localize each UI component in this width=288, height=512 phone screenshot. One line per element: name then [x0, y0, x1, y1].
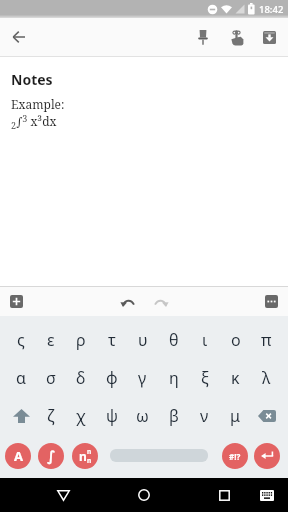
staticText: ζ — [47, 405, 55, 427]
button[interactable]: γ — [127, 358, 158, 398]
staticText: η — [169, 367, 179, 389]
button[interactable]: θ — [158, 321, 189, 358]
button[interactable] — [132, 483, 156, 507]
button[interactable]: ς — [6, 321, 36, 358]
button[interactable]: A — [5, 443, 31, 469]
staticText: δ — [76, 367, 86, 389]
staticText: κ — [231, 367, 240, 389]
staticText: n — [87, 447, 92, 456]
staticText: ξ — [201, 367, 209, 389]
button[interactable] — [151, 292, 171, 312]
button[interactable]: ι — [189, 321, 220, 358]
button[interactable] — [256, 484, 278, 506]
button[interactable]: χ — [66, 398, 96, 433]
button[interactable] — [193, 27, 213, 47]
staticText: n — [79, 448, 87, 464]
button[interactable] — [251, 398, 282, 433]
button[interactable] — [254, 443, 280, 469]
button[interactable]: τ — [96, 321, 127, 358]
staticText: 18:42 — [259, 3, 284, 16]
button[interactable] — [6, 398, 36, 433]
button[interactable] — [226, 27, 246, 47]
button[interactable] — [110, 449, 208, 462]
button[interactable]: δ — [66, 358, 96, 398]
staticText: τ — [108, 329, 116, 351]
staticText: θ — [169, 329, 179, 351]
button[interactable]: #!? — [222, 443, 248, 469]
staticText: φ — [106, 367, 118, 389]
staticText: χ — [76, 405, 86, 427]
button[interactable]: κ — [220, 358, 251, 398]
staticText: ψ — [106, 405, 118, 427]
staticText: Notes — [11, 70, 53, 89]
button[interactable]: υ — [127, 321, 158, 358]
button[interactable]: ξ — [189, 358, 220, 398]
button[interactable]: σ — [36, 358, 66, 398]
button[interactable]: ζ — [36, 398, 66, 433]
staticText: α — [16, 367, 26, 389]
button[interactable]: n — [72, 443, 98, 469]
staticText: σ — [46, 367, 56, 389]
button[interactable]: α — [6, 358, 36, 398]
button[interactable] — [10, 295, 23, 308]
staticText: n — [87, 456, 92, 465]
staticText: A — [14, 447, 23, 465]
button[interactable] — [212, 483, 236, 507]
button[interactable]: η — [158, 358, 189, 398]
staticText: 2∫3 x³dx — [11, 112, 57, 131]
button[interactable]: ∫ — [38, 443, 64, 469]
staticText: ρ — [76, 329, 86, 351]
button[interactable]: ο — [220, 321, 251, 358]
staticText: μ — [230, 405, 241, 427]
staticText: #!? — [229, 451, 241, 462]
button[interactable] — [7, 25, 31, 49]
button[interactable]: π — [251, 321, 282, 358]
button[interactable]: ρ — [66, 321, 96, 358]
staticText: λ — [262, 367, 271, 389]
button[interactable]: μ — [220, 398, 251, 433]
button[interactable] — [51, 483, 75, 507]
button[interactable] — [265, 295, 278, 308]
staticText: Example: — [11, 96, 65, 112]
staticText: ε — [47, 329, 55, 351]
button[interactable]: ε — [36, 321, 66, 358]
button[interactable]: φ — [96, 358, 127, 398]
button[interactable]: λ — [251, 358, 282, 398]
button[interactable]: ω — [127, 398, 158, 433]
button[interactable] — [259, 27, 279, 47]
staticText: ι — [202, 329, 208, 351]
staticText: ω — [136, 405, 149, 427]
staticText: ο — [231, 329, 241, 351]
staticText: β — [169, 405, 179, 427]
staticText: υ — [138, 329, 148, 351]
button[interactable]: ν — [189, 398, 220, 433]
button[interactable]: β — [158, 398, 189, 433]
staticText: γ — [138, 367, 147, 389]
staticText: ∫ — [47, 448, 56, 464]
staticText: ν — [200, 405, 209, 427]
button[interactable]: ψ — [96, 398, 127, 433]
staticText: ς — [17, 329, 25, 351]
button[interactable] — [118, 292, 138, 312]
staticText: π — [261, 329, 272, 351]
